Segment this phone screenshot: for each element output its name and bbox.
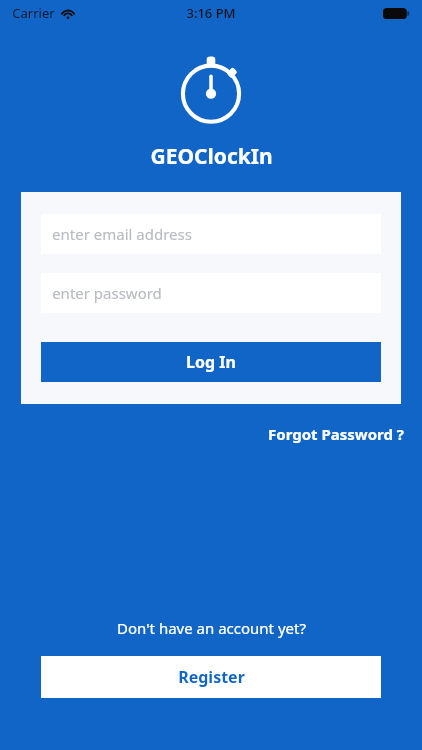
staticText: 3:16 PM: [186, 4, 236, 22]
staticText: enter email address: [52, 224, 192, 244]
staticText: Register: [178, 666, 245, 688]
staticText: Don't have an account yet?: [117, 618, 306, 638]
button[interactable]: Register: [41, 656, 381, 698]
staticText: enter password: [52, 283, 162, 303]
button[interactable]: enter email address: [41, 214, 381, 254]
staticText: GEOClockIn: [150, 142, 273, 171]
button[interactable]: Forgot Password ?: [250, 418, 422, 450]
other: GEOClockIn logo: [175, 48, 247, 120]
button[interactable]: Log In: [41, 342, 381, 382]
other: Battery: [383, 7, 410, 20]
button[interactable]: enter password: [41, 273, 381, 313]
staticText: Log In: [186, 351, 236, 373]
staticText: Carrier: [12, 4, 55, 22]
staticText: Forgot Password ?: [268, 424, 404, 444]
other: Wi-Fi: [60, 7, 76, 19]
